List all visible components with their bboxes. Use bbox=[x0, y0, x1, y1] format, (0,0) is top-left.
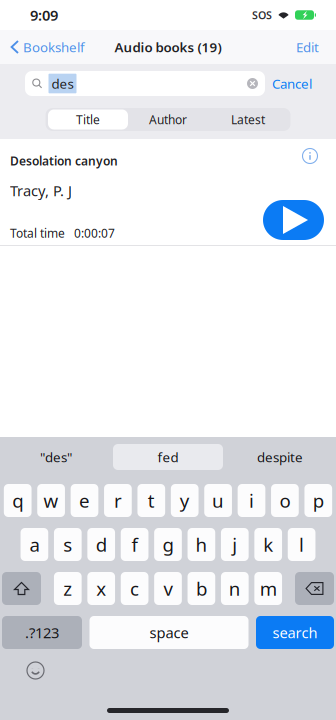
staticText: c bbox=[130, 576, 139, 601]
button[interactable]: b bbox=[188, 572, 215, 605]
button[interactable]: d bbox=[87, 528, 115, 561]
staticText: w bbox=[44, 488, 59, 513]
button[interactable]: s bbox=[54, 528, 82, 561]
button[interactable]: t bbox=[137, 484, 165, 517]
button[interactable]: y bbox=[171, 484, 199, 517]
staticText: n bbox=[229, 576, 241, 601]
button[interactable]: i bbox=[238, 484, 265, 517]
staticText: Latest bbox=[231, 111, 265, 127]
staticText: Audio books (19) bbox=[114, 38, 221, 56]
staticText: fed bbox=[157, 448, 178, 466]
staticText: o bbox=[279, 488, 290, 513]
button[interactable]: o bbox=[271, 484, 299, 517]
button[interactable]: Delete bbox=[295, 572, 334, 605]
staticText: z bbox=[63, 576, 72, 601]
button[interactable]: Emoji keyboard bbox=[27, 662, 44, 679]
button[interactable]: Information bbox=[302, 148, 318, 164]
staticText: j bbox=[232, 532, 237, 557]
button[interactable]: q bbox=[4, 484, 32, 517]
button[interactable]: k bbox=[254, 528, 282, 561]
staticText: space bbox=[149, 623, 188, 642]
staticText: Tracy, P. J bbox=[10, 181, 72, 200]
button[interactable]: Play bbox=[263, 200, 324, 240]
button[interactable]: c bbox=[121, 572, 148, 605]
staticText: x bbox=[96, 576, 106, 601]
staticText: SOS bbox=[252, 8, 272, 22]
staticText: Author bbox=[149, 111, 187, 127]
button[interactable]: u bbox=[204, 484, 232, 517]
button[interactable]: Title bbox=[45, 108, 290, 131]
staticText: a bbox=[29, 532, 39, 557]
button[interactable]: j bbox=[221, 528, 249, 561]
button[interactable]: h bbox=[188, 528, 215, 561]
staticText: Desolation canyon bbox=[10, 153, 118, 169]
button[interactable]: a bbox=[21, 528, 48, 561]
button[interactable]: m bbox=[254, 572, 282, 605]
staticText: Title bbox=[76, 111, 100, 127]
staticText: t bbox=[148, 488, 155, 513]
button[interactable]: f bbox=[121, 528, 148, 561]
staticText: Edit bbox=[296, 38, 319, 56]
button[interactable]: g bbox=[154, 528, 182, 561]
button[interactable]: x bbox=[87, 572, 115, 605]
button[interactable]: despite bbox=[224, 437, 336, 477]
staticText: v bbox=[163, 576, 172, 601]
button[interactable]: v bbox=[154, 572, 182, 605]
staticText: l bbox=[299, 532, 304, 557]
staticText: 9:09 bbox=[30, 5, 58, 25]
button[interactable]: w bbox=[37, 484, 65, 517]
staticText: r bbox=[114, 488, 122, 513]
staticText: g bbox=[162, 532, 173, 557]
staticText: u bbox=[212, 488, 224, 513]
staticText: f bbox=[132, 532, 138, 557]
staticText: y bbox=[180, 488, 190, 513]
staticText: Cancel bbox=[272, 75, 312, 92]
staticText: e bbox=[79, 488, 90, 513]
staticText: p bbox=[313, 488, 324, 513]
staticText: Total time 0:00:07 bbox=[10, 225, 115, 241]
button[interactable]: e bbox=[71, 484, 98, 517]
staticText: despite bbox=[257, 448, 303, 466]
button[interactable]: n bbox=[221, 572, 249, 605]
button[interactable]: Bookshelf bbox=[0, 30, 85, 64]
button[interactable]: "des" bbox=[0, 437, 112, 477]
button[interactable]: Cancel bbox=[272, 75, 312, 92]
staticText: d bbox=[96, 532, 107, 557]
staticText: k bbox=[263, 532, 273, 557]
button[interactable]: p bbox=[304, 484, 332, 517]
button[interactable]: l bbox=[288, 528, 315, 561]
staticText: i bbox=[249, 488, 254, 513]
staticText: s bbox=[63, 532, 72, 557]
staticText: search bbox=[272, 623, 317, 642]
staticText: des bbox=[51, 75, 73, 92]
staticText: Bookshelf bbox=[23, 38, 85, 56]
button[interactable]: search bbox=[256, 616, 334, 649]
staticText: q bbox=[12, 488, 23, 513]
button[interactable]: fed bbox=[112, 437, 224, 477]
button[interactable]: space bbox=[89, 616, 248, 649]
button[interactable]: .?123 bbox=[2, 616, 82, 649]
button[interactable]: Shift bbox=[2, 572, 41, 605]
button[interactable]: des bbox=[25, 71, 265, 96]
staticText: b bbox=[196, 576, 207, 601]
staticText: h bbox=[195, 532, 207, 557]
staticText: "des" bbox=[40, 448, 72, 466]
staticText: m bbox=[260, 576, 277, 601]
button[interactable]: z bbox=[54, 572, 82, 605]
staticText: .?123 bbox=[25, 623, 59, 642]
button[interactable]: r bbox=[104, 484, 132, 517]
button[interactable]: Edit bbox=[296, 30, 336, 64]
